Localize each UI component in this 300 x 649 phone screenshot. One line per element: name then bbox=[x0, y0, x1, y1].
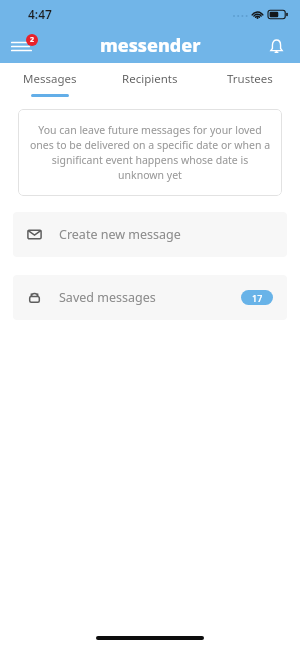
staticText: Saved messages bbox=[59, 289, 156, 306]
staticText: 4:47 bbox=[28, 6, 52, 22]
staticText: Trustees bbox=[227, 71, 273, 87]
button[interactable]: Saved messages bbox=[13, 275, 287, 320]
button[interactable]: Trustees bbox=[200, 63, 300, 94]
button[interactable]: Messages bbox=[0, 63, 100, 97]
button[interactable]: Menu, 2 notifications bbox=[6, 28, 42, 63]
staticText: messender bbox=[100, 33, 201, 58]
staticText: Create new message bbox=[59, 226, 181, 243]
staticText: 2 bbox=[30, 35, 35, 45]
staticText: Messages bbox=[23, 71, 77, 87]
staticText: Recipients bbox=[122, 71, 178, 87]
button[interactable]: Create new message bbox=[13, 212, 287, 257]
staticText: 17 bbox=[252, 292, 263, 304]
button[interactable]: Recipients bbox=[100, 63, 200, 94]
staticText: You can leave future messages for your l… bbox=[28, 123, 272, 182]
button[interactable]: Notifications bbox=[260, 30, 292, 62]
